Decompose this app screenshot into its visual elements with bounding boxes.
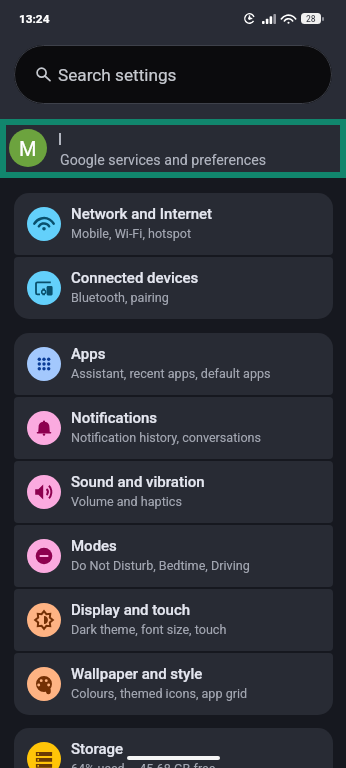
staticText: 13:24 [19, 12, 50, 26]
button[interactable]: Apps [14, 333, 333, 395]
staticText: Connected devices [71, 269, 199, 287]
button[interactable]: Display and touch [14, 589, 333, 651]
staticText: 64% used – 45.68 GB free [71, 761, 216, 768]
staticText: Storage [71, 740, 124, 758]
staticText: Network and Internet [71, 205, 213, 223]
staticText: Colours, themed icons, app grid [71, 686, 248, 701]
button[interactable]: Search settings [14, 45, 332, 104]
staticText: Dark theme, font size, touch [71, 622, 227, 637]
staticText: Wallpaper and style [71, 665, 203, 683]
staticText: Sound and vibration [71, 473, 205, 491]
staticText: Volume and haptics [71, 494, 182, 509]
staticText: Notification history, conversations [71, 430, 262, 445]
button[interactable]: Sound and vibration [14, 461, 333, 523]
button[interactable]: M [6, 125, 340, 172]
staticText: Search settings [58, 65, 177, 85]
button[interactable]: Storage [14, 728, 333, 768]
button[interactable]: Connected devices [14, 257, 333, 319]
staticText: Do Not Disturb, Bedtime, Driving [71, 558, 250, 573]
staticText: Bluetooth, pairing [71, 290, 169, 305]
staticText: Mobile, Wi-Fi, hotspot [71, 226, 192, 241]
staticText: Notifications [71, 409, 158, 427]
button[interactable]: Network and Internet [14, 193, 333, 255]
button[interactable]: Notifications [14, 397, 333, 459]
staticText: Display and touch [71, 601, 191, 619]
staticText: Apps [71, 345, 106, 363]
button[interactable]: Wallpaper and style [14, 653, 333, 715]
staticText: Assistant, recent apps, default apps [71, 366, 271, 381]
staticText: M [19, 137, 37, 160]
staticText: Google services and preferences [60, 152, 267, 169]
staticText: 28 [306, 14, 316, 24]
button[interactable]: Modes [14, 525, 333, 587]
staticText: Modes [71, 537, 117, 555]
